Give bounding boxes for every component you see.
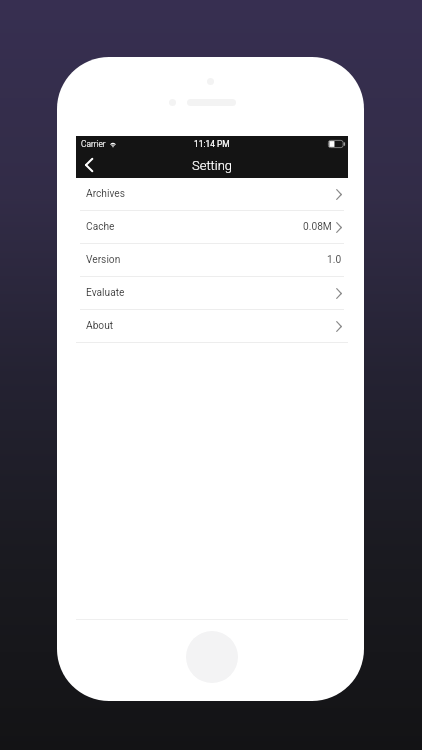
staticText: Carrier: [81, 139, 106, 149]
staticText: Evaluate: [86, 287, 125, 299]
staticText: 1.0: [327, 254, 342, 266]
staticText: Archives: [86, 188, 125, 200]
button[interactable]: Cache: [76, 211, 348, 243]
button[interactable]: Version: [76, 244, 348, 276]
staticText: 11:14 PM: [194, 139, 230, 149]
staticText: About: [86, 320, 114, 332]
button[interactable]: Back: [76, 152, 106, 178]
button[interactable]: Home: [186, 631, 238, 683]
staticText: 0.08M: [303, 221, 332, 233]
button[interactable]: Archives: [76, 178, 348, 210]
staticText: Cache: [86, 221, 115, 233]
button[interactable]: Evaluate: [76, 277, 348, 309]
button[interactable]: About: [76, 310, 348, 342]
staticText: Setting: [192, 158, 233, 173]
staticText: Version: [86, 254, 121, 266]
